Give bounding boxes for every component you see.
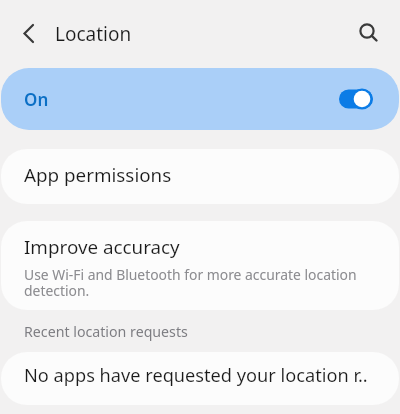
staticText: Recent location requests: [24, 322, 188, 341]
button[interactable]: [347, 12, 391, 56]
staticText: Location: [55, 21, 132, 47]
staticText: App permissions: [24, 162, 172, 188]
button[interactable]: Improve accuracy: [1, 221, 399, 310]
button[interactable]: App permissions: [1, 149, 399, 204]
staticText: No apps have requested your location r..: [24, 363, 368, 388]
button[interactable]: [8, 13, 48, 53]
staticText: On: [24, 88, 49, 111]
button[interactable]: No apps have requested your location r..: [1, 352, 399, 405]
staticText: Improve accuracy: [24, 234, 180, 260]
button[interactable]: On: [1, 68, 399, 130]
staticText: Use Wi-Fi and Bluetooth for more accurat…: [24, 265, 357, 300]
